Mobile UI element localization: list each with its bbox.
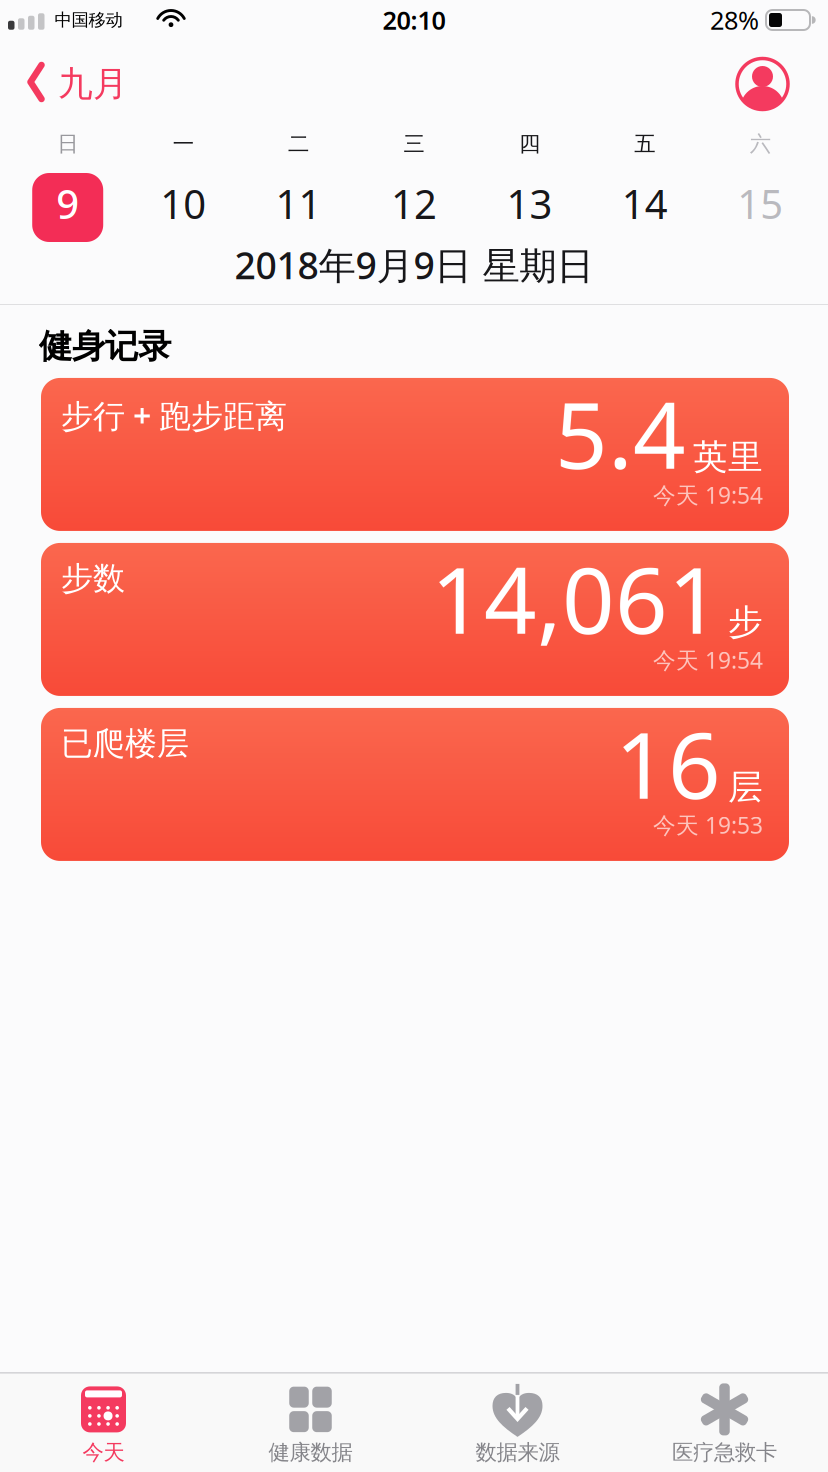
staticText: 14,061 <box>431 537 721 659</box>
staticText: 日 <box>57 131 78 157</box>
staticText: 已爬楼层 <box>61 724 189 763</box>
staticText: 今天 <box>82 1439 124 1466</box>
staticText: 14 <box>622 177 668 230</box>
button[interactable]: 12 <box>356 177 472 230</box>
button[interactable]: 9 <box>10 169 125 238</box>
button[interactable]: 数据来源 <box>414 1386 621 1466</box>
button[interactable]: 个人资料 <box>737 48 828 109</box>
staticText: 2018年9月9日 星期日 <box>234 240 593 290</box>
staticText: 健身记录 <box>39 326 171 367</box>
button[interactable]: 已爬楼层 <box>41 708 789 861</box>
staticText: 医疗急救卡 <box>672 1439 777 1466</box>
staticText: 步数 <box>61 559 125 598</box>
staticText: 步 <box>728 601 763 643</box>
button[interactable]: 健康数据 <box>207 1386 414 1466</box>
staticText: 步行 + 跑步距离 <box>61 394 287 436</box>
staticText: 英里 <box>693 436 763 478</box>
staticText: 12 <box>391 177 437 230</box>
staticText: 15 <box>737 177 783 230</box>
staticText: 三 <box>403 131 424 157</box>
button[interactable]: 步行 + 跑步距离 <box>41 378 789 531</box>
staticText: 今天 19:53 <box>653 810 763 840</box>
staticText: 今天 19:54 <box>653 645 763 675</box>
staticText: 5.4 <box>555 372 686 494</box>
button[interactable]: 11 <box>241 177 356 230</box>
staticText: 健康数据 <box>268 1439 352 1466</box>
button[interactable]: 10 <box>125 177 241 230</box>
staticText: 一 <box>173 131 194 157</box>
staticText: 今天 19:54 <box>653 480 763 510</box>
button[interactable]: 13 <box>472 177 587 230</box>
staticText: 10 <box>160 177 206 230</box>
button[interactable]: 步数 <box>41 543 789 696</box>
staticText: 六 <box>750 131 771 157</box>
staticText: 13 <box>506 177 552 230</box>
staticText: 9 <box>56 177 79 230</box>
staticText: 数据来源 <box>475 1439 559 1466</box>
button[interactable]: 14 <box>587 177 702 230</box>
staticText: 16 <box>615 702 721 824</box>
staticText: 20:10 <box>382 3 445 37</box>
staticText: 28% <box>710 3 759 37</box>
staticText: 中国移动 <box>54 9 122 31</box>
staticText: 二 <box>288 131 309 157</box>
button[interactable]: 医疗急救卡 <box>621 1386 828 1466</box>
staticText: 11 <box>276 177 322 230</box>
button[interactable]: 今天 <box>0 1386 207 1466</box>
staticText: 层 <box>728 766 763 808</box>
button[interactable]: 15 <box>703 177 818 230</box>
staticText: 四 <box>519 131 540 157</box>
button[interactable]: 九月 <box>0 55 128 103</box>
staticText: 九月 <box>58 63 128 105</box>
staticText: 五 <box>634 131 655 157</box>
